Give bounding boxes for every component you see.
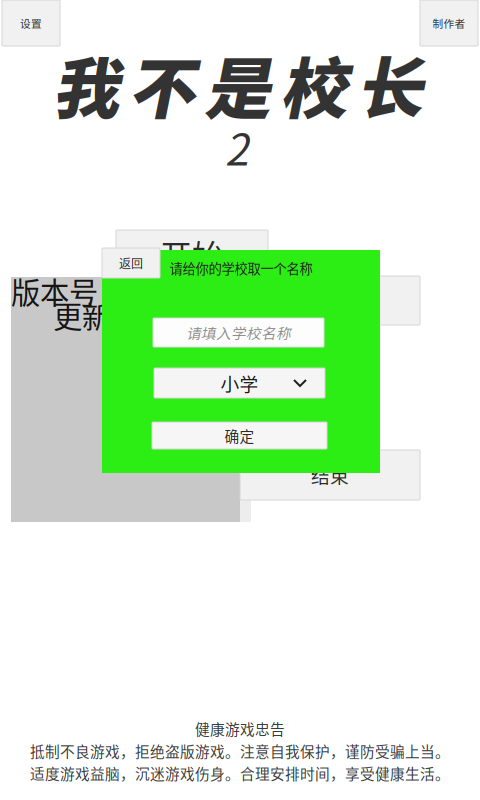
button[interactable]: 返回 <box>102 248 160 278</box>
staticText: 结束 <box>311 461 349 488</box>
staticText: 我不是校长 <box>52 36 423 132</box>
button[interactable]: 开始 <box>116 230 268 278</box>
staticText: 更新内容： <box>53 294 198 336</box>
button[interactable]: 结束 <box>240 450 420 500</box>
button[interactable]: 制作者 <box>420 0 478 46</box>
staticText: 健康游戏忠告 <box>195 718 285 739</box>
staticText: 开始 <box>160 231 224 277</box>
staticText: 适度游戏益脑，沉迷游戏伤身。合理安排时间，享受健康生活。 <box>30 762 450 784</box>
staticText: 小学 <box>220 369 258 396</box>
button[interactable]: 确定 <box>152 422 327 449</box>
staticText: 确定 <box>224 425 254 446</box>
staticText: 设置 <box>20 15 42 31</box>
staticText: 抵制不良游戏，拒绝盗版游戏。注意自我保护，谨防受骗上当。 <box>30 740 450 761</box>
staticText: 返回 <box>119 254 143 272</box>
staticText: 版本号：2.00正式版 <box>11 270 240 312</box>
button[interactable]: 小学 <box>154 368 325 398</box>
staticText: 制作者 <box>432 15 465 31</box>
button[interactable]: 请填入学校名称 <box>153 318 324 347</box>
button[interactable]: 设置 <box>2 0 60 46</box>
staticText: 2 <box>225 116 249 178</box>
staticText: 请填入学校名称 <box>186 322 291 343</box>
button[interactable]: 排行 <box>240 276 420 325</box>
staticText: 请给你的学校取一个名称 <box>169 258 312 278</box>
